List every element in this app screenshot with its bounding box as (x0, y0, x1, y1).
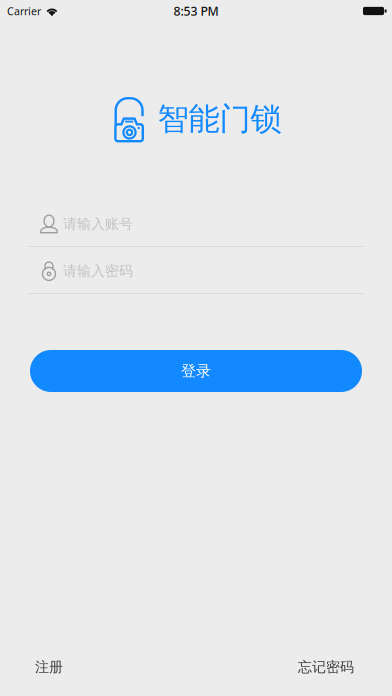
staticText: Carrier (7, 4, 41, 18)
button[interactable]: 忘记密码 (298, 658, 354, 676)
button[interactable]: 注册 (35, 658, 63, 676)
staticText: 忘记密码 (298, 658, 354, 676)
staticText: 8:53 PM (173, 3, 218, 19)
staticText: 请输入账号 (63, 215, 133, 233)
staticText: 智能门锁 (157, 99, 281, 139)
button[interactable]: 登录 (30, 350, 362, 392)
staticText: 注册 (35, 658, 63, 676)
staticText: 登录 (181, 361, 211, 380)
staticText: 请输入密码 (63, 262, 133, 280)
